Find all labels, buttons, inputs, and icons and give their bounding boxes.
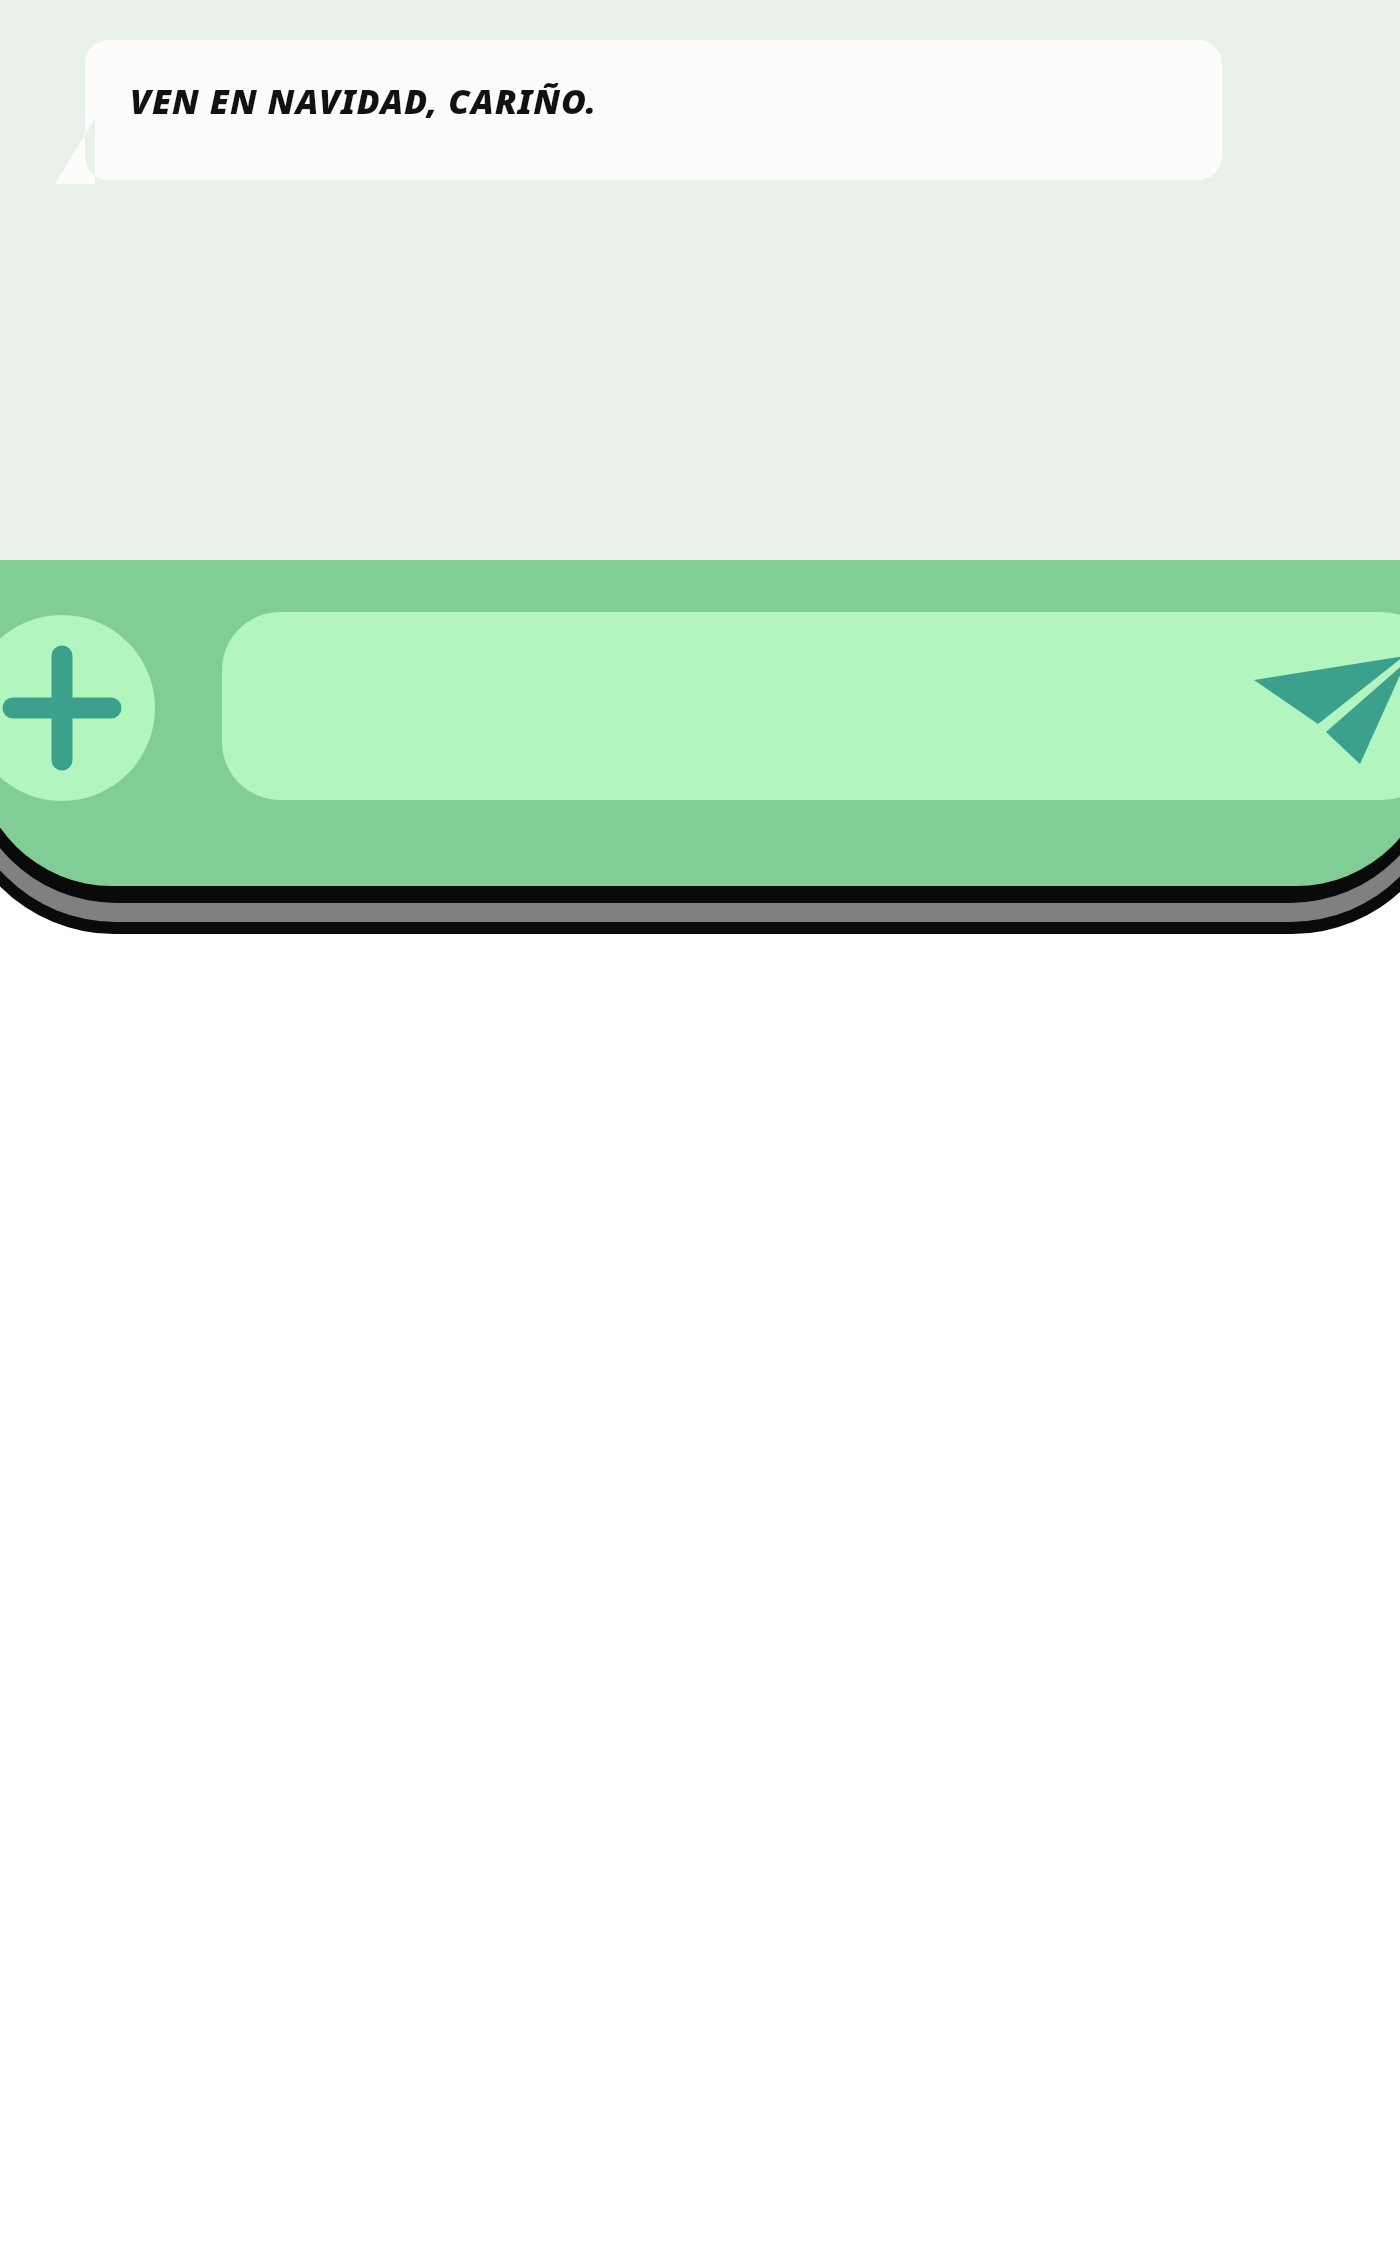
button[interactable]: Message input	[222, 612, 1222, 800]
button[interactable]	[85, 40, 1222, 184]
button[interactable]: Send	[1245, 625, 1400, 795]
staticText: VEN EN NAVIDAD, CARIÑO.	[130, 78, 598, 124]
button[interactable]: Add attachment	[0, 615, 155, 801]
